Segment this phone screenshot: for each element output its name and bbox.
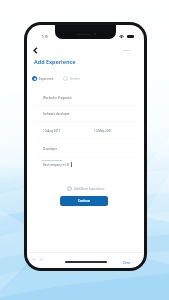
button[interactable]: Previous field (30, 256, 37, 263)
staticText: Experience (39, 77, 54, 81)
staticText: step 3/4 (123, 49, 132, 52)
staticText: Continue (78, 199, 91, 203)
staticText: Add Experience (34, 58, 76, 65)
button[interactable]: 10-Aug-2017 (27, 25, 45, 29)
button[interactable]: Continue (60, 196, 108, 206)
staticText: Tell us more about yourself (42, 159, 63, 161)
staticText: 1:19 (42, 35, 48, 39)
staticText: Fresher (70, 77, 80, 81)
button[interactable]: Back (30, 45, 40, 55)
button[interactable]: Add More Experience (67, 186, 105, 191)
button[interactable]: Developer (27, 25, 42, 29)
button[interactable]: Software developer (27, 25, 54, 29)
button[interactable]: Next field (38, 256, 45, 263)
button[interactable]: Experience (32, 76, 54, 81)
staticText: Best company in UK (43, 163, 70, 167)
button[interactable]: Best company in UK (43, 162, 72, 167)
button[interactable]: 10-May-2021 (27, 25, 45, 29)
staticText: Add More Experience (74, 187, 105, 191)
button[interactable]: Fresher (63, 76, 80, 81)
button[interactable]: Worked in Pragmatic (27, 25, 56, 29)
button[interactable]: Done (27, 25, 35, 29)
